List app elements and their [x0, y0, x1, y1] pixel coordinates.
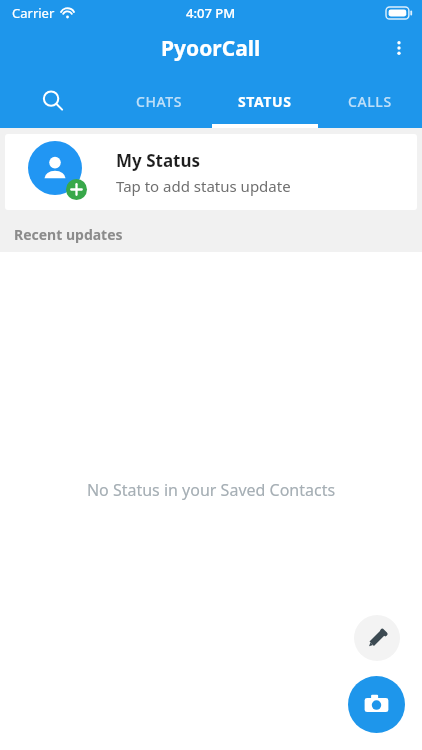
staticText: Carrier: [12, 4, 55, 22]
button[interactable]: CALLS: [318, 77, 422, 125]
staticText: Tap to add status update: [116, 176, 291, 196]
staticText: My Status: [116, 149, 201, 172]
staticText: 4:07 PM: [186, 4, 236, 22]
staticText: PyoorCall: [161, 34, 261, 63]
staticText: Recent updates: [14, 225, 123, 244]
staticText: CHATS: [136, 92, 183, 111]
button[interactable]: CHATS: [106, 77, 212, 125]
button[interactable]: My Status: [5, 134, 417, 210]
button[interactable]: Search: [0, 77, 106, 125]
staticText: STATUS: [238, 92, 292, 111]
button[interactable]: Write status: [354, 615, 400, 661]
button[interactable]: STATUS: [212, 77, 318, 125]
staticText: CALLS: [348, 92, 392, 111]
staticText: No Status in your Saved Contacts: [0, 479, 422, 501]
button[interactable]: Take photo: [348, 676, 405, 733]
button[interactable]: More options: [376, 25, 422, 71]
